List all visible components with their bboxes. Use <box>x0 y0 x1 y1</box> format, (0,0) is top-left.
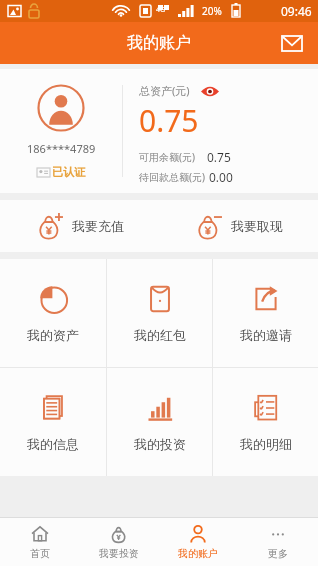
staticText: 09:46 <box>281 3 312 19</box>
staticText: 我要充值 <box>72 218 124 234</box>
button[interactable]: 我要取现 <box>159 200 318 252</box>
staticText: 0.00 <box>209 169 233 185</box>
staticText: 我要取现 <box>231 218 283 234</box>
staticText: 可用余额(元) <box>139 150 195 164</box>
staticText: 186****4789 <box>27 141 96 156</box>
staticText: 我的投资 <box>134 436 186 452</box>
staticText: 更多 <box>268 547 288 560</box>
staticText: 我的账户 <box>127 33 191 53</box>
button[interactable]: 我的明细 <box>213 368 318 476</box>
staticText: 总资产(元) <box>139 83 190 98</box>
button[interactable]: 我的邀请 <box>213 259 318 367</box>
staticText: 我的邀请 <box>240 327 292 343</box>
button[interactable]: 我要充值 <box>0 200 159 252</box>
button[interactable]: 我的账户 <box>158 518 238 566</box>
staticText: 我的资产 <box>27 327 79 343</box>
button[interactable]: 我要投资 <box>79 518 158 566</box>
button[interactable]: 更多 <box>238 518 318 566</box>
staticText: 0.75 <box>139 100 199 141</box>
staticText: 0.75 <box>207 149 231 165</box>
staticText: 待回款总额(元) <box>139 170 205 184</box>
button[interactable]: 我的资产 <box>0 259 106 367</box>
staticText: 我要投资 <box>99 547 139 560</box>
staticText: 我的红包 <box>134 327 186 343</box>
button[interactable]: Toggle balance visibility <box>200 84 220 98</box>
staticText: 4G <box>156 5 166 15</box>
staticText: 20% <box>202 4 222 18</box>
button[interactable]: 我的信息 <box>0 368 106 476</box>
staticText: 已认证 <box>52 165 85 179</box>
staticText: 我的信息 <box>27 436 79 452</box>
button[interactable]: 首页 <box>0 518 79 566</box>
staticText: 我的账户 <box>178 547 218 560</box>
staticText: 我的明细 <box>240 436 292 452</box>
button[interactable]: 我的投资 <box>107 368 212 476</box>
button[interactable]: 我的红包 <box>107 259 212 367</box>
staticText: 首页 <box>30 547 50 560</box>
button[interactable]: Messages <box>276 27 308 59</box>
